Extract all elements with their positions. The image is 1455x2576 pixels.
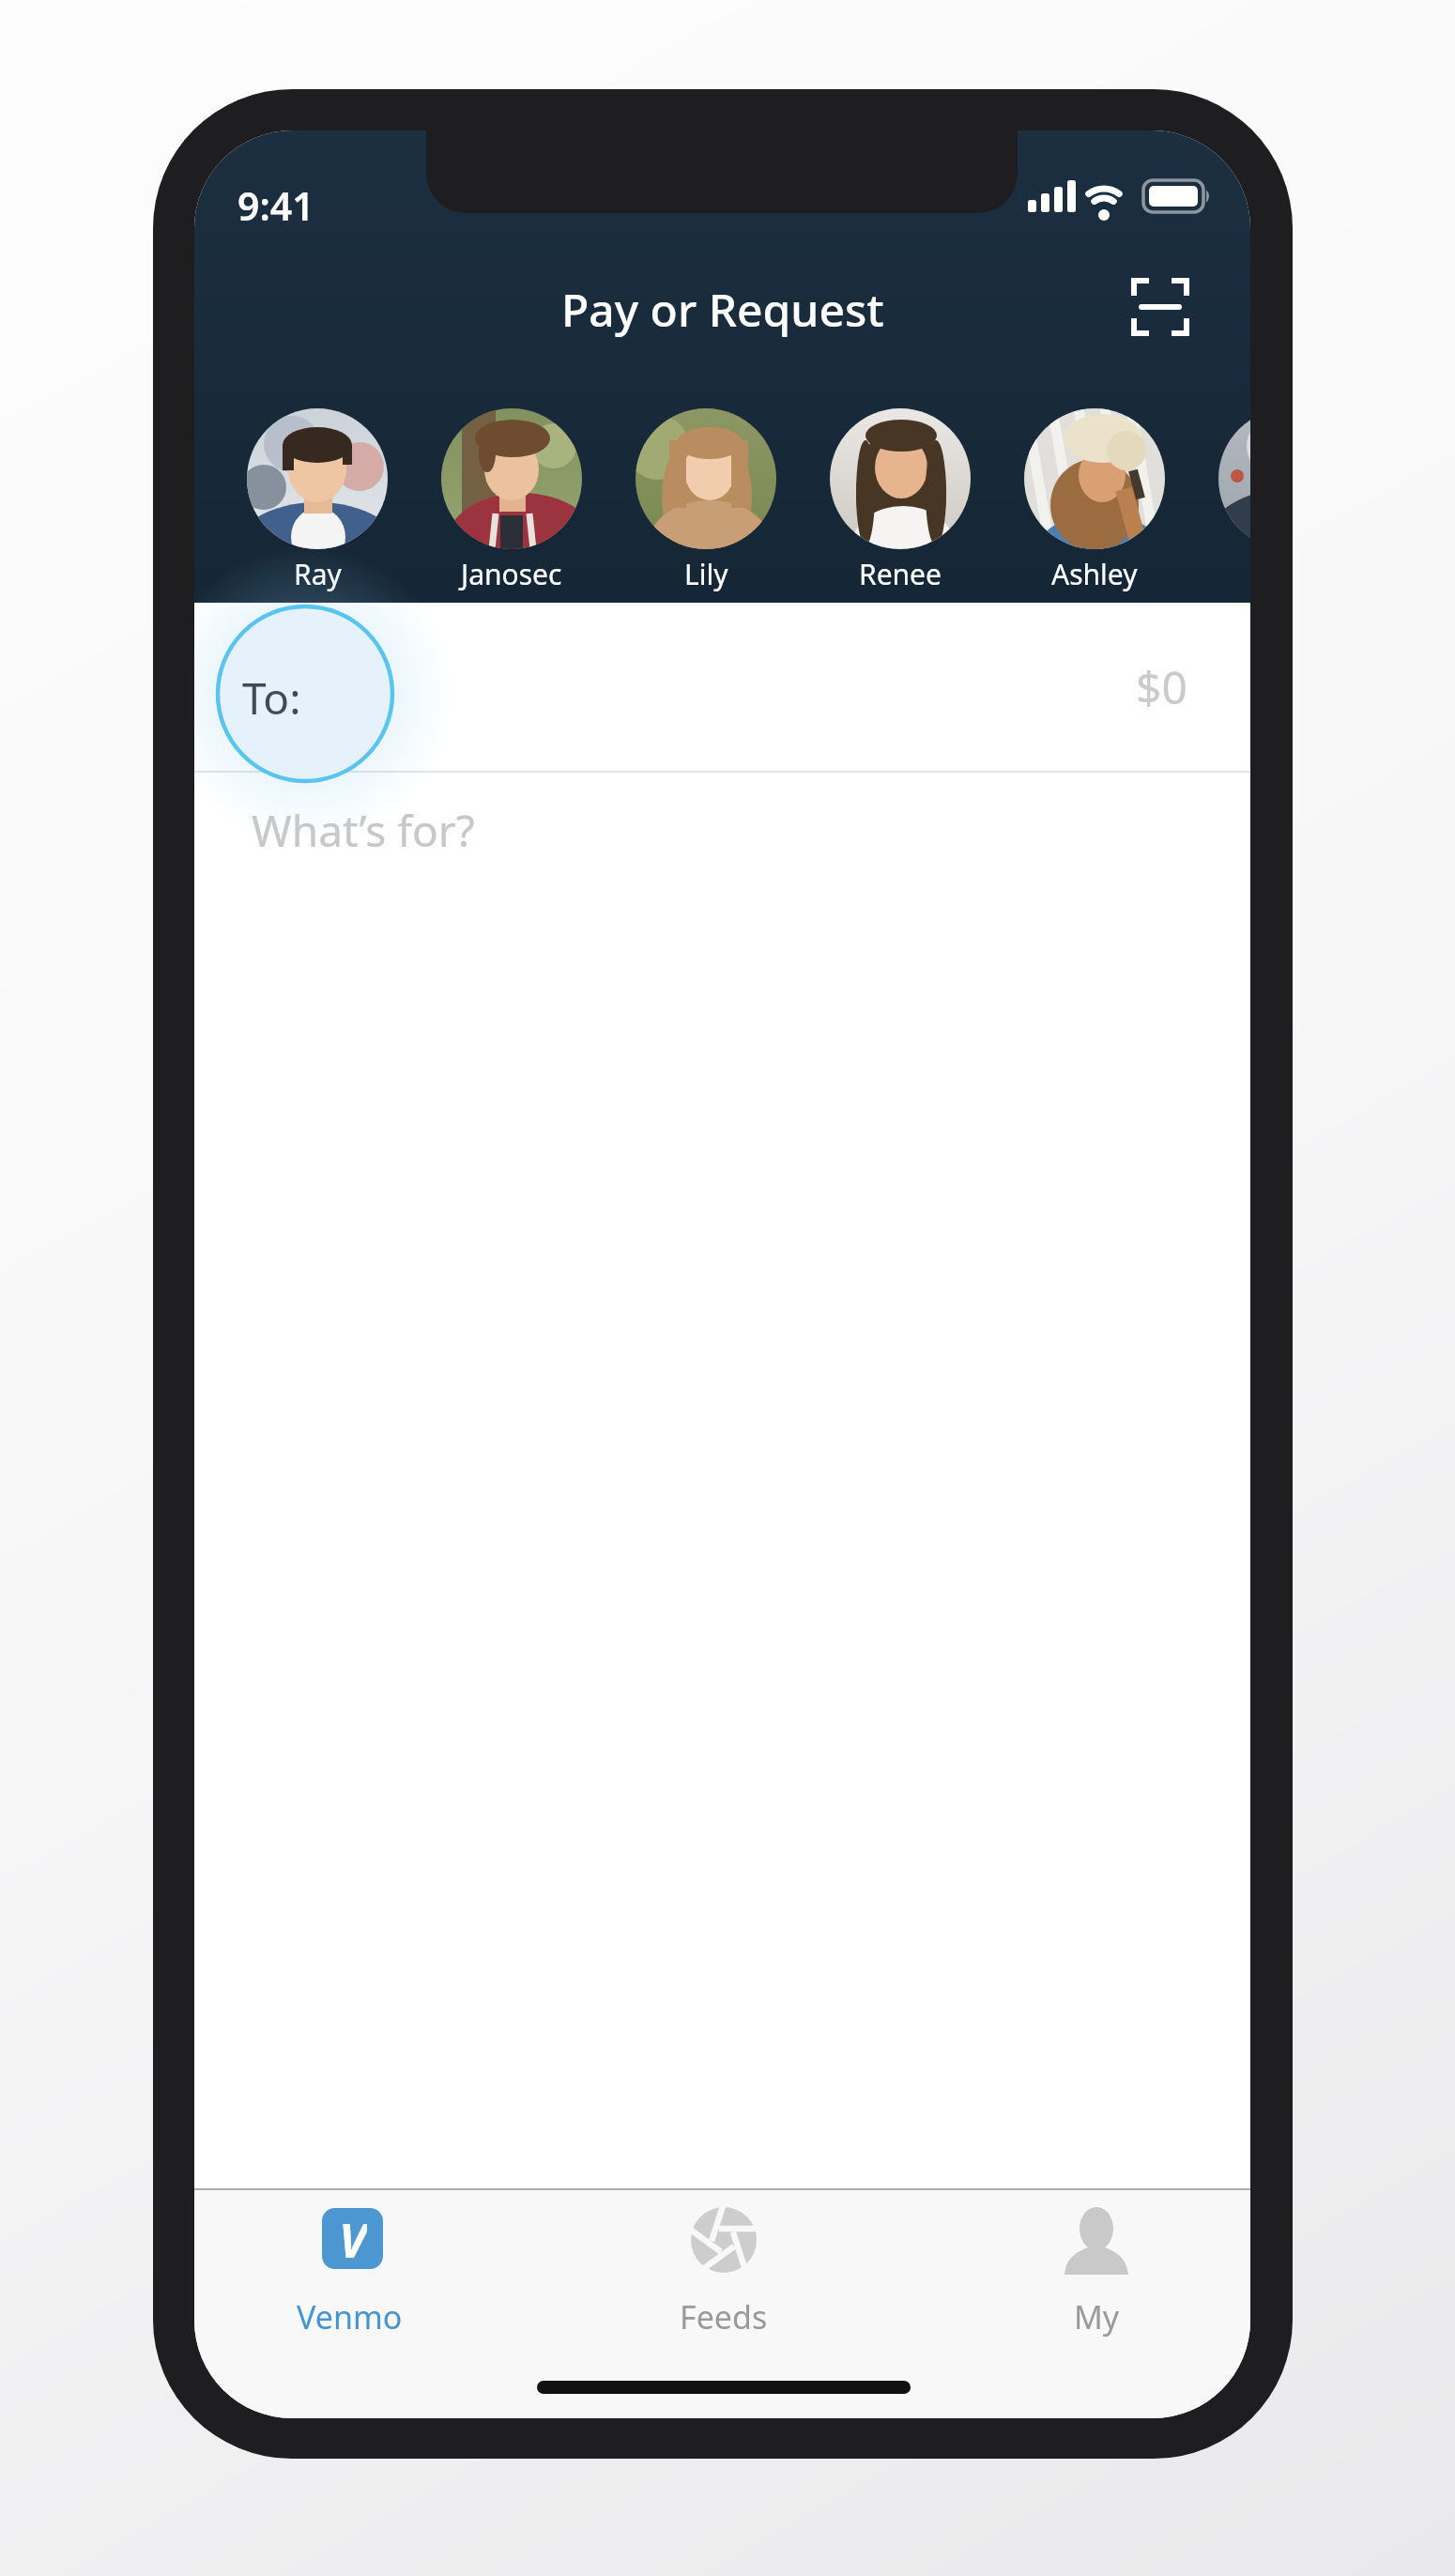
staticText: Ashley <box>1051 555 1138 593</box>
staticText: Lily <box>684 555 728 593</box>
button[interactable]: To: <box>194 603 1250 771</box>
staticText: Renee <box>859 555 942 593</box>
button[interactable] <box>247 408 388 549</box>
staticText: To: <box>242 668 301 728</box>
staticText: What’s for? <box>252 801 475 860</box>
button[interactable]: My <box>1012 2198 1181 2348</box>
button[interactable] <box>1131 278 1189 336</box>
button[interactable] <box>1218 408 1250 549</box>
button[interactable]: V <box>265 2198 434 2348</box>
button[interactable]: Feeds <box>639 2198 808 2348</box>
button[interactable] <box>441 408 582 549</box>
staticText: My <box>1074 2295 1120 2338</box>
staticText: Feeds <box>680 2295 768 2338</box>
staticText: Ray <box>294 555 342 593</box>
button[interactable] <box>1024 408 1165 549</box>
button[interactable] <box>636 408 776 549</box>
staticText: V <box>339 2208 367 2269</box>
staticText: 9:41 <box>237 179 314 232</box>
staticText: Janosec <box>461 555 562 593</box>
staticText: Pay or Request <box>561 279 884 340</box>
staticText: $0 <box>1136 656 1187 717</box>
button[interactable] <box>830 408 971 549</box>
staticText: Venmo <box>297 2295 403 2338</box>
button[interactable]: What’s for? <box>194 773 1250 885</box>
